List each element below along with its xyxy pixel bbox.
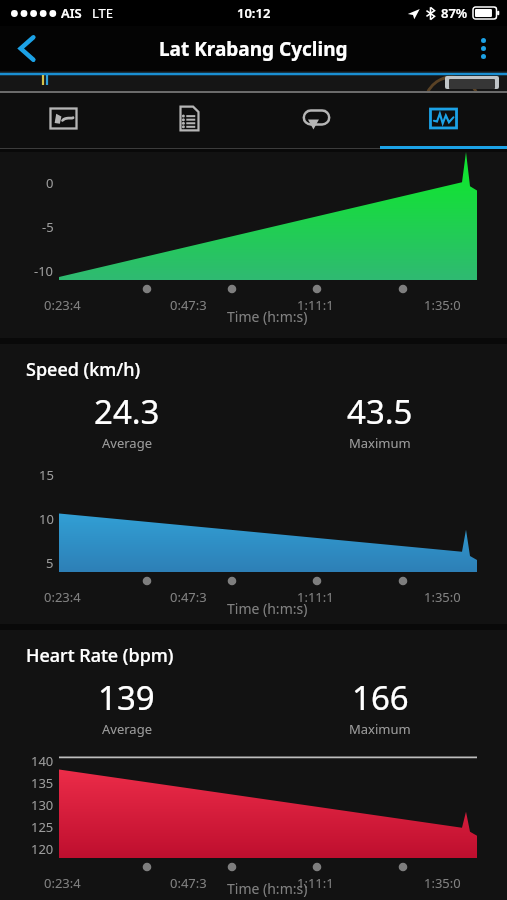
staticText: Time (h:m:s) [227,307,308,326]
staticText: 0 [46,174,54,192]
staticText: 0:47:3 [170,874,207,892]
staticText: -10 [34,262,54,280]
button[interactable]: Back [0,26,54,71]
button[interactable]: Speed (km/h) [0,344,507,624]
staticText: 125 [31,818,54,836]
staticText: 24.3 [94,389,160,434]
staticText: 43.5 [347,389,413,434]
staticText: 5 [46,554,54,572]
staticText: Maximum [349,720,411,738]
staticText: 15 [39,466,54,484]
staticText: -5 [42,218,54,236]
button[interactable]: Heart Rate (bpm) [0,630,507,900]
staticText: Time (h:m:s) [227,879,308,898]
staticText: 0:23:4 [44,874,81,892]
staticText: Maximum [349,434,411,452]
staticText: 166 [352,675,409,720]
button[interactable]: Details [126,93,253,149]
staticText: 10:12 [237,4,271,22]
button[interactable]: More options [459,26,507,71]
staticText: Time (h:m:s) [227,599,308,618]
staticText: 1:35:0 [424,296,461,314]
staticText: 135 [31,774,54,792]
staticText: Heart Rate (bpm) [26,643,174,668]
staticText: AIS [61,4,82,22]
staticText: 140 [31,752,54,770]
staticText: 0:23:4 [44,588,81,606]
staticText: 87% [441,4,468,22]
button[interactable]: Laps [253,93,380,149]
staticText: 1:35:0 [424,588,461,606]
button[interactable]: 0 [0,152,507,338]
staticText: 0:23:4 [44,296,81,314]
staticText: 130 [31,796,54,814]
staticText: 0:47:3 [170,296,207,314]
staticText: 1:35:0 [424,874,461,892]
staticText: LTE [92,4,114,22]
staticText: 1:11:1 [297,588,334,606]
button[interactable]: Charts [380,93,507,149]
staticText: 0:47:3 [170,588,207,606]
staticText: 139 [98,675,155,720]
staticText: 1:11:1 [297,296,334,314]
staticText: 120 [31,840,54,858]
staticText: Lat Krabang Cycling [159,36,348,62]
button[interactable]: Map [0,93,126,149]
staticText: Speed (km/h) [26,357,141,382]
staticText: Average [102,434,152,452]
staticText: 10 [39,510,54,528]
staticText: Average [102,720,152,738]
staticText: 1:11:1 [297,874,334,892]
